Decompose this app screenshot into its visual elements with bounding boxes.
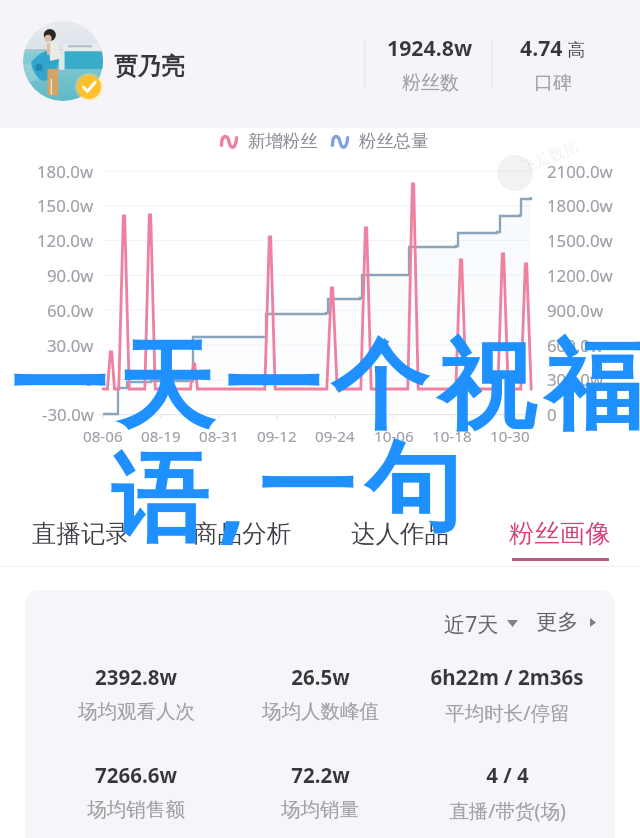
- staticText: 300.0w: [547, 368, 604, 391]
- staticText: 90.0w: [47, 264, 94, 287]
- staticText: 1500.0w: [547, 229, 613, 252]
- staticText: 场均销量: [281, 797, 359, 822]
- staticText: 150.0w: [37, 194, 94, 217]
- staticText: 30.0w: [47, 334, 94, 357]
- staticText: 600.0w: [547, 334, 604, 357]
- staticText: 09-12: [257, 426, 297, 447]
- staticText: 场均观看人次: [78, 699, 195, 724]
- staticText: 72.2w: [291, 761, 350, 789]
- button[interactable]: 7266.6w: [41, 761, 231, 814]
- staticText: 900.0w: [547, 299, 604, 322]
- staticText: 1924.8w: [387, 33, 473, 62]
- button[interactable]: 粉丝总量: [331, 130, 419, 152]
- staticText: 0: [84, 368, 94, 391]
- staticText: 26.5w: [291, 663, 350, 691]
- staticText: 0: [547, 403, 557, 426]
- button[interactable]: 1924.8w: [370, 33, 490, 86]
- staticText: 口碑: [534, 71, 572, 95]
- staticText: 180.0w: [37, 160, 94, 183]
- staticText: 10-30: [490, 426, 530, 447]
- staticText: 4.74 高: [520, 33, 586, 62]
- button[interactable]: 直播记录: [15, 504, 147, 566]
- button[interactable]: 4.74 高: [493, 33, 613, 86]
- staticText: 4 / 4: [486, 761, 529, 789]
- button[interactable]: 近7天: [444, 609, 510, 638]
- staticText: 10-18: [432, 426, 472, 447]
- staticText: 新增粉丝: [248, 130, 318, 152]
- staticText: 达人作品: [351, 518, 449, 549]
- button[interactable]: 商品分析: [176, 504, 308, 566]
- button[interactable]: 26.5w: [225, 663, 415, 716]
- button[interactable]: 粉丝画像: [494, 504, 626, 566]
- button[interactable]: 2392.8w: [41, 663, 231, 716]
- staticText: 2100.0w: [547, 160, 613, 183]
- staticText: 飞瓜数据: [519, 137, 581, 178]
- staticText: 08-06: [83, 426, 123, 447]
- button[interactable]: 更多: [536, 609, 585, 636]
- staticText: 120.0w: [37, 229, 94, 252]
- staticText: 08-19: [141, 426, 181, 447]
- staticText: 场均人数峰值: [262, 699, 379, 724]
- button[interactable]: Profile photo: [23, 21, 103, 101]
- staticText: 一天一个祝福: [5, 326, 640, 448]
- staticText: 60.0w: [47, 299, 94, 322]
- staticText: 直播/带货(场): [449, 797, 566, 824]
- button[interactable]: 新增粉丝: [220, 130, 308, 152]
- staticText: 1200.0w: [547, 264, 613, 287]
- staticText: 更多: [536, 609, 579, 636]
- staticText: 1800.0w: [547, 194, 613, 217]
- staticText: 10-06: [374, 426, 414, 447]
- button[interactable]: 6h22m / 2m36s: [412, 663, 602, 718]
- staticText: 近7天: [444, 609, 499, 638]
- staticText: 场均销售额: [87, 797, 185, 822]
- button[interactable]: 4 / 4: [412, 761, 602, 816]
- staticText: 粉丝画像: [509, 518, 611, 550]
- button[interactable]: 72.2w: [225, 761, 415, 814]
- staticText: 一句: [258, 428, 578, 550]
- button[interactable]: 达人作品: [334, 504, 466, 566]
- staticText: 2392.8w: [95, 663, 177, 691]
- staticText: 语,: [111, 428, 331, 560]
- staticText: 粉丝总量: [359, 130, 429, 152]
- staticText: 7266.6w: [95, 761, 177, 789]
- staticText: 6h22m / 2m36s: [430, 663, 584, 691]
- staticText: 平均时长/停留: [445, 699, 570, 726]
- staticText: -30.0w: [42, 403, 94, 426]
- staticText: 直播记录: [32, 518, 130, 549]
- staticText: 09-24: [315, 426, 355, 447]
- staticText: 粉丝数: [402, 71, 459, 95]
- button[interactable]: 贾乃亮: [114, 51, 185, 81]
- staticText: 商品分析: [193, 518, 291, 549]
- staticText: 08-31: [199, 426, 239, 447]
